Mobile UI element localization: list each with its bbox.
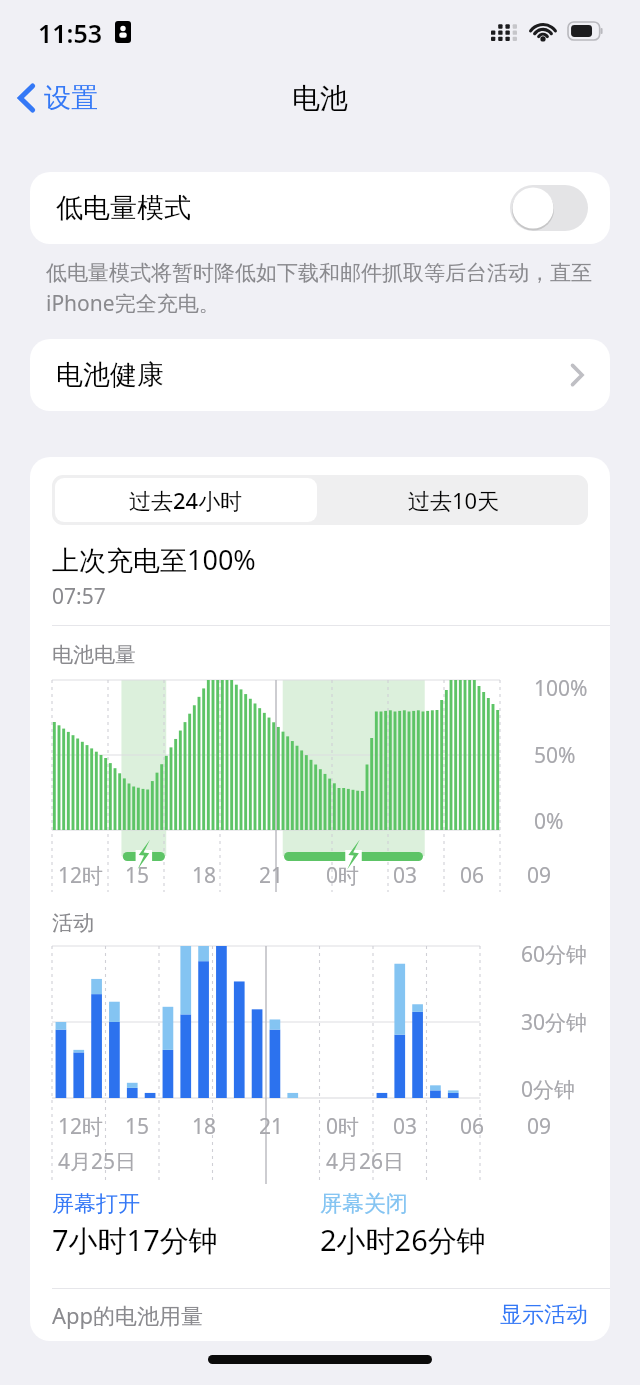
staticText: 15 [125, 861, 150, 890]
staticText: 过去24小时 [129, 485, 243, 515]
staticText: 18 [192, 1112, 217, 1141]
staticText: 显示活动 [500, 1301, 588, 1329]
staticText: 过去10天 [408, 485, 500, 515]
staticText: 上次充电至100% [52, 541, 256, 578]
staticText: 屏幕打开 [52, 1190, 140, 1218]
staticText: 06 [460, 1112, 485, 1141]
staticText: 09 [527, 861, 552, 890]
staticText: 21 [259, 861, 284, 890]
button[interactable]: 电池健康 [30, 339, 610, 411]
staticText: 50% [534, 741, 576, 770]
staticText: 低电量模式将暂时降低如下载和邮件抓取等后台活动，直至 iPhone完全充电。 [46, 258, 604, 317]
staticText: 15 [125, 1112, 150, 1141]
staticText: 30分钟 [521, 1008, 588, 1037]
staticText: 11:53 [38, 16, 103, 50]
staticText: 电池电量 [52, 642, 136, 668]
staticText: 06 [460, 861, 485, 890]
button[interactable]: 过去10天 [320, 475, 588, 525]
staticText: 12时 [58, 1112, 104, 1141]
button[interactable]: 显示活动 [500, 1301, 588, 1329]
staticText: 低电量模式 [56, 191, 191, 225]
staticText: 12时 [58, 861, 104, 890]
staticText: 0分钟 [521, 1075, 576, 1104]
staticText: 屏幕关闭 [320, 1190, 408, 1218]
staticText: 03 [393, 861, 418, 890]
staticText: 活动 [52, 910, 94, 936]
staticText: 设置 [44, 81, 98, 115]
staticText: 电池健康 [56, 358, 164, 392]
staticText: 0% [534, 807, 564, 836]
staticText: 100% [534, 674, 588, 703]
staticText: 03 [393, 1112, 418, 1141]
staticText: 21 [259, 1112, 284, 1141]
staticText: App的电池用量 [52, 1300, 204, 1330]
staticText: 09 [527, 1112, 552, 1141]
staticText: 4月26日 [326, 1147, 405, 1176]
staticText: 0时 [326, 1112, 360, 1141]
staticText: 7小时17分钟 [52, 1220, 218, 1260]
staticText: 电池 [292, 81, 348, 116]
button[interactable]: 低电量模式 [30, 172, 610, 244]
staticText: 18 [192, 861, 217, 890]
button[interactable]: 低电量模式开关 [510, 185, 588, 231]
staticText: 4月25日 [58, 1147, 137, 1176]
staticText: 07:57 [52, 582, 106, 611]
button[interactable]: 过去24小时 [55, 478, 317, 522]
button[interactable]: 设置 [0, 75, 108, 121]
staticText: 2小时26分钟 [320, 1220, 486, 1260]
staticText: 0时 [326, 861, 360, 890]
staticText: 60分钟 [521, 940, 588, 969]
